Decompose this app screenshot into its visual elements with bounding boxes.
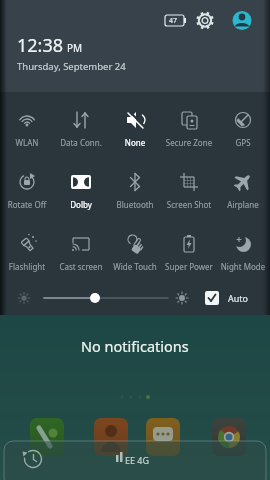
button[interactable]: WLAN: [0, 92, 54, 154]
staticText: Secure Zone: [162, 137, 216, 148]
button[interactable]: Secure Zone: [162, 92, 216, 154]
button[interactable]: Super Power: [162, 216, 216, 278]
staticText: 12:38: [17, 33, 64, 58]
staticText: Screen Shot: [162, 199, 216, 210]
staticText: Data Conn.: [54, 137, 108, 148]
staticText: Dolby: [54, 199, 108, 210]
staticText: Cast screen: [54, 261, 108, 272]
staticText: Airplane: [216, 199, 270, 210]
button[interactable]: [100, 445, 170, 473]
staticText: Super Power: [162, 261, 216, 272]
button[interactable]: [162, 9, 187, 33]
staticText: Bluetooth: [108, 199, 162, 210]
button[interactable]: Rotate Off: [0, 154, 54, 216]
staticText: PM: [67, 41, 83, 55]
button[interactable]: Flashlight: [0, 216, 54, 278]
button[interactable]: Airplane: [216, 154, 270, 216]
button[interactable]: [17, 443, 49, 475]
button[interactable]: Cast screen: [54, 216, 108, 278]
button[interactable]: [230, 9, 254, 33]
staticText: Flashlight: [0, 261, 54, 272]
button[interactable]: Dolby: [54, 154, 108, 216]
staticText: WLAN: [0, 137, 54, 148]
button[interactable]: [198, 283, 258, 313]
button[interactable]: None: [108, 92, 162, 154]
button[interactable]: GPS: [216, 92, 270, 154]
button[interactable]: Data Conn.: [54, 92, 108, 154]
button[interactable]: Auto: [228, 292, 249, 304]
staticText: 47: [169, 16, 178, 26]
button[interactable]: Wide Touch: [108, 216, 162, 278]
button[interactable]: [194, 9, 217, 33]
button[interactable]: [40, 283, 176, 313]
staticText: Night Mode: [216, 261, 270, 272]
staticText: EE 4G: [125, 454, 150, 466]
button[interactable]: Bluetooth: [108, 154, 162, 216]
staticText: Rotate Off: [0, 199, 54, 210]
button[interactable]: Screen Shot: [162, 154, 216, 216]
button[interactable]: Night Mode: [216, 216, 270, 278]
staticText: Thursday, September 24: [17, 60, 126, 73]
staticText: GPS: [216, 137, 270, 148]
staticText: No notifications: [81, 336, 189, 356]
staticText: None: [108, 137, 162, 148]
staticText: Wide Touch: [108, 261, 162, 272]
